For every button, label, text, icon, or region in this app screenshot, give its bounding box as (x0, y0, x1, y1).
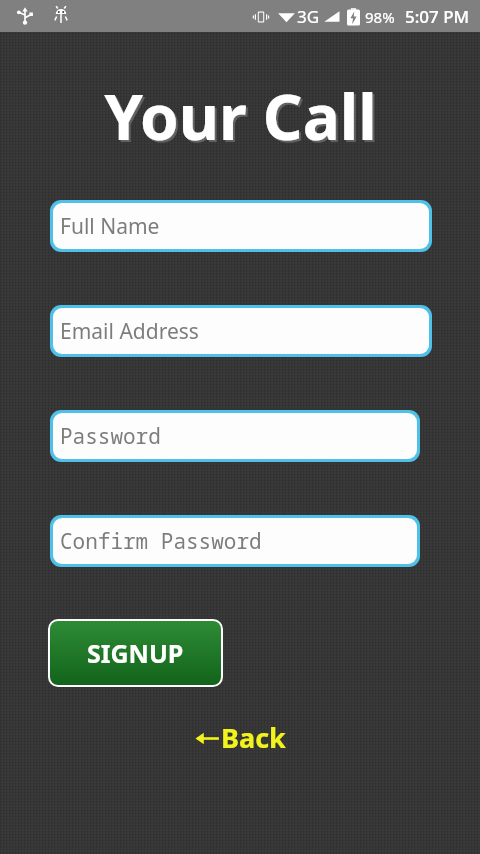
staticText: Confirm Password (60, 527, 262, 556)
staticText: 5:07 PM (405, 5, 470, 28)
staticText: Back (221, 719, 286, 756)
button[interactable]: SIGNUP (48, 619, 223, 687)
staticText: Your Call (106, 76, 379, 160)
button[interactable]: Back (185, 715, 296, 760)
staticText: Full Name (60, 212, 160, 241)
staticText: 98% (365, 7, 395, 27)
staticText: 3G (297, 5, 320, 28)
button[interactable]: Confirm Password (50, 515, 420, 567)
staticText: Your Call (104, 74, 377, 158)
staticText: SIGNUP (87, 636, 184, 670)
button[interactable]: Full Name (50, 200, 432, 252)
button[interactable]: Email Address (50, 305, 432, 357)
staticText: Password (60, 422, 161, 451)
button[interactable]: Password (50, 410, 420, 462)
staticText: Email Address (60, 317, 199, 346)
